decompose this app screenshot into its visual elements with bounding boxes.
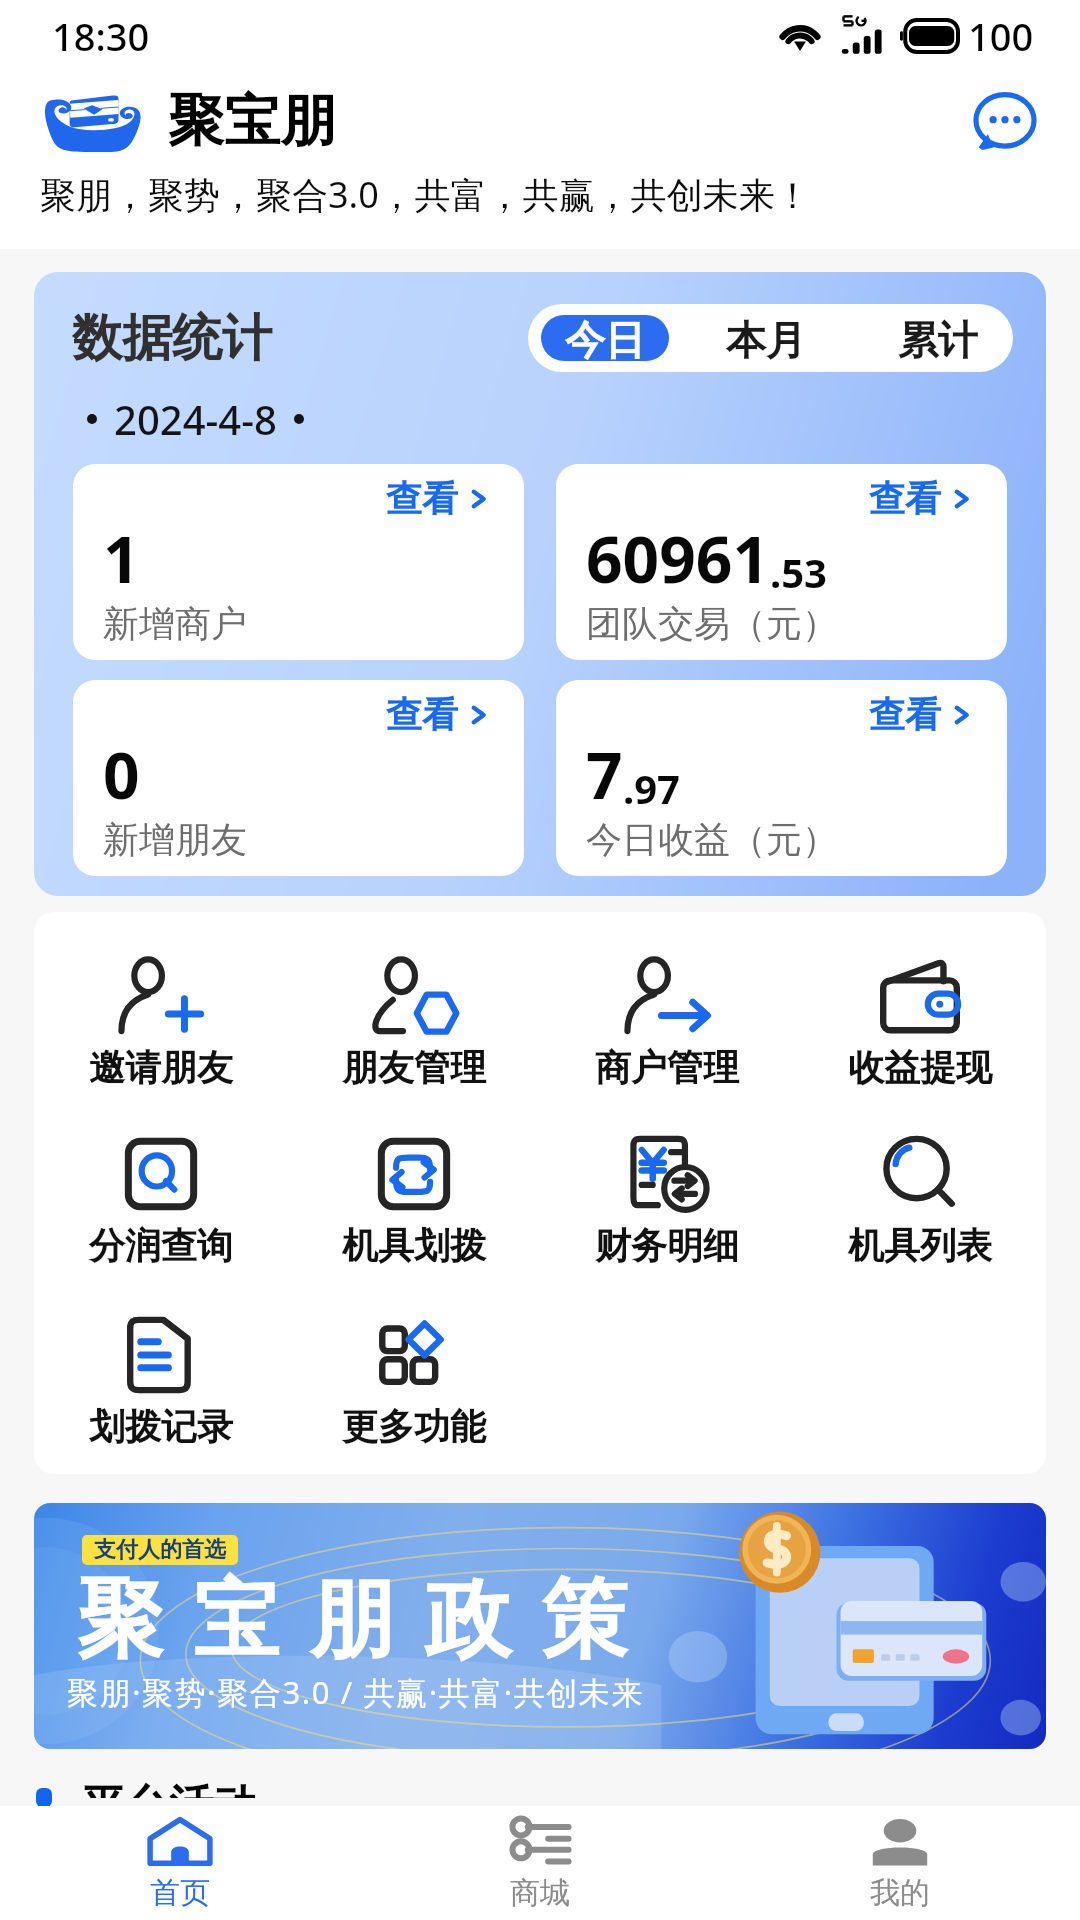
button[interactable]: 首页	[0, 1806, 360, 1920]
staticText: 商户管理	[595, 1045, 739, 1090]
staticText: 7	[586, 731, 623, 818]
button[interactable]: 累计	[863, 315, 1013, 361]
staticText: 机具划拨	[342, 1223, 486, 1268]
button[interactable]: 收益提现	[793, 957, 1046, 1090]
staticText: 邀请朋友	[89, 1045, 233, 1090]
staticText: .97	[623, 761, 680, 815]
staticText: 1	[103, 515, 140, 602]
button[interactable]: 商城	[360, 1806, 720, 1920]
staticText: 聚朋，聚势，聚合3.0，共富，共赢，共创未来！	[40, 170, 811, 219]
button[interactable]: Customer service messages	[968, 84, 1042, 158]
staticText: 我的	[870, 1874, 930, 1912]
button[interactable]: 邀请朋友	[34, 957, 287, 1090]
button[interactable]: 财务明细	[540, 1135, 793, 1268]
staticText: 查看	[386, 476, 458, 521]
button[interactable]: 查看	[556, 680, 1007, 876]
button[interactable]: 更多功能	[287, 1316, 540, 1449]
button[interactable]: 我的	[720, 1806, 1080, 1920]
button[interactable]: 查看	[556, 464, 1007, 660]
staticText: 2024-4-8	[114, 392, 277, 446]
button[interactable]: 机具划拨	[287, 1135, 540, 1268]
staticText: 0	[103, 731, 140, 818]
staticText: 60961	[586, 515, 770, 602]
button[interactable]: 查看	[73, 464, 524, 660]
staticText: 朋友管理	[342, 1045, 486, 1090]
button[interactable]: 本月	[669, 315, 863, 361]
staticText: 聚宝朋	[168, 86, 336, 157]
staticText: 新增商户	[103, 601, 247, 646]
staticText: 更多功能	[342, 1404, 486, 1449]
staticText: 聚宝朋政策	[62, 1566, 642, 1674]
staticText: 今日收益（元）	[586, 817, 838, 862]
staticText: .53	[770, 545, 827, 599]
button[interactable]: 商户管理	[540, 957, 793, 1090]
button[interactable]: 朋友管理	[287, 957, 540, 1090]
staticText: 商城	[510, 1874, 570, 1912]
staticText: 本月	[726, 315, 806, 361]
button[interactable]: 今日	[541, 315, 669, 361]
staticText: 分润查询	[89, 1223, 233, 1268]
button[interactable]: 机具列表	[793, 1135, 1046, 1268]
staticText: 机具列表	[848, 1223, 992, 1268]
staticText: 财务明细	[595, 1223, 739, 1268]
staticText: 聚朋·聚势·聚合3.0 / 共赢·共富·共创未来	[67, 1671, 645, 1713]
staticText: 收益提现	[848, 1045, 992, 1090]
staticText: 累计	[898, 315, 978, 361]
staticText: 新增朋友	[103, 817, 247, 862]
staticText: 划拨记录	[89, 1404, 233, 1449]
button[interactable]: 分润查询	[34, 1135, 287, 1268]
staticText: 今日	[565, 315, 645, 361]
staticText: 数据统计	[72, 307, 272, 370]
button[interactable]: 查看	[73, 680, 524, 876]
staticText: 首页	[150, 1874, 210, 1912]
staticText: 18:30	[52, 10, 150, 62]
staticText: 查看	[869, 476, 941, 521]
staticText: 100	[968, 10, 1034, 62]
staticText: 平台活动	[81, 1779, 257, 1798]
staticText: 支付人的首选	[94, 1536, 226, 1564]
staticText: 查看	[869, 692, 941, 737]
button[interactable]: 划拨记录	[34, 1316, 287, 1449]
button[interactable]: 支付人的首选	[34, 1503, 1046, 1749]
staticText: 查看	[386, 692, 458, 737]
staticText: 团队交易（元）	[586, 601, 838, 646]
